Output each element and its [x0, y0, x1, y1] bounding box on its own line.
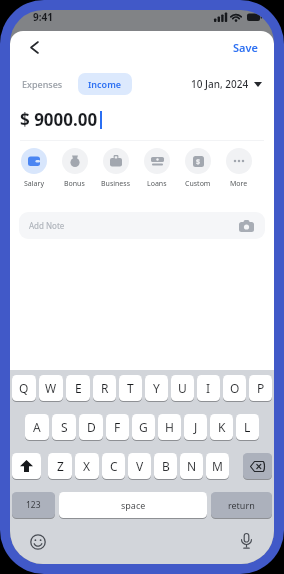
- staticText: W: [45, 380, 57, 396]
- button[interactable]: V: [128, 453, 151, 480]
- staticText: Salary: [24, 179, 44, 189]
- staticText: $ 9000.00: [20, 108, 98, 131]
- button[interactable]: M: [206, 453, 229, 480]
- button[interactable]: Loans: [136, 148, 177, 189]
- button[interactable]: A: [25, 414, 49, 441]
- button[interactable]: [30, 534, 46, 550]
- staticText: Y: [153, 380, 160, 396]
- staticText: $: [196, 157, 201, 167]
- staticText: 9:41: [33, 10, 53, 24]
- staticText: K: [218, 419, 226, 435]
- staticText: J: [194, 419, 198, 435]
- staticText: Save: [233, 40, 258, 55]
- button[interactable]: return: [211, 492, 272, 519]
- staticText: L: [244, 419, 251, 435]
- button[interactable]: G: [132, 414, 155, 441]
- button[interactable]: H: [158, 414, 181, 441]
- button[interactable]: D: [79, 414, 103, 441]
- button[interactable]: C: [102, 453, 125, 480]
- staticText: I: [206, 380, 211, 396]
- staticText: 123: [26, 499, 41, 511]
- staticText: Bonus: [64, 179, 85, 189]
- button[interactable]: [26, 39, 42, 55]
- button[interactable]: B: [154, 453, 177, 480]
- staticText: space: [121, 499, 146, 511]
- staticText: Custom: [185, 179, 211, 189]
- button[interactable]: 123: [12, 492, 55, 519]
- button[interactable]: L: [236, 414, 259, 441]
- button[interactable]: Save: [233, 40, 258, 55]
- staticText: F: [114, 419, 121, 435]
- staticText: S: [61, 419, 68, 435]
- staticText: P: [257, 380, 265, 396]
- button[interactable]: [12, 453, 41, 480]
- staticText: N: [187, 458, 197, 474]
- staticText: V: [136, 458, 144, 474]
- staticText: T: [127, 380, 134, 396]
- staticText: U: [178, 380, 187, 396]
- button[interactable]: W: [39, 375, 63, 402]
- button[interactable]: U: [171, 375, 194, 402]
- staticText: C: [110, 458, 118, 474]
- staticText: X: [83, 458, 91, 474]
- button[interactable]: Business: [95, 148, 136, 189]
- staticText: Expenses: [22, 78, 63, 90]
- button[interactable]: 10 Jan, 2024: [191, 77, 262, 91]
- button[interactable]: [240, 533, 253, 550]
- staticText: G: [139, 419, 148, 435]
- button[interactable]: Income: [78, 73, 132, 95]
- button[interactable]: Bonus: [54, 148, 95, 189]
- button[interactable]: Y: [145, 375, 168, 402]
- button[interactable]: Add Note: [19, 212, 265, 239]
- button[interactable]: Salary: [13, 148, 54, 189]
- staticText: Business: [101, 179, 131, 189]
- button[interactable]: R: [93, 375, 116, 402]
- button[interactable]: $: [177, 148, 218, 189]
- button[interactable]: [243, 453, 272, 480]
- button[interactable]: Expenses: [22, 74, 63, 94]
- staticText: B: [162, 458, 170, 474]
- button[interactable]: space: [59, 492, 207, 519]
- staticText: E: [75, 380, 82, 396]
- button[interactable]: P: [249, 375, 272, 402]
- staticText: Z: [57, 458, 64, 474]
- button[interactable]: E: [66, 375, 90, 402]
- staticText: 10 Jan, 2024: [191, 77, 249, 91]
- button[interactable]: J: [184, 414, 207, 441]
- staticText: Add Note: [29, 220, 65, 231]
- staticText: return: [228, 499, 255, 511]
- staticText: O: [230, 380, 240, 396]
- button[interactable]: More: [218, 148, 259, 189]
- staticText: D: [87, 419, 96, 435]
- button[interactable]: Q: [12, 375, 36, 402]
- button[interactable]: K: [210, 414, 233, 441]
- staticText: Q: [19, 380, 29, 396]
- button[interactable]: O: [223, 375, 246, 402]
- staticText: R: [101, 380, 109, 396]
- button[interactable]: T: [119, 375, 142, 402]
- button[interactable]: I: [197, 375, 220, 402]
- button[interactable]: F: [106, 414, 129, 441]
- staticText: More: [230, 179, 248, 189]
- staticText: H: [165, 419, 174, 435]
- staticText: M: [212, 458, 223, 474]
- button[interactable]: Z: [48, 453, 72, 480]
- staticText: Loans: [147, 179, 167, 189]
- button[interactable]: N: [180, 453, 203, 480]
- button[interactable]: X: [75, 453, 99, 480]
- button[interactable]: S: [52, 414, 76, 441]
- staticText: A: [33, 419, 41, 435]
- staticText: Income: [88, 78, 122, 90]
